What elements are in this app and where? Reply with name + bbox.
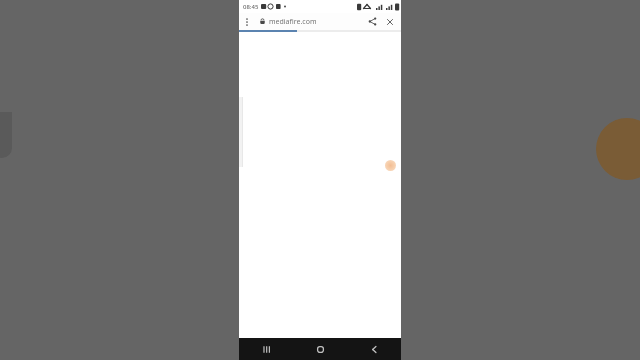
button[interactable]: Back — [347, 338, 401, 360]
button[interactable]: Share — [363, 13, 381, 30]
button[interactable]: Close — [381, 13, 399, 30]
staticText: mediafire.com — [269, 17, 317, 27]
button[interactable]: Home — [293, 338, 347, 360]
button[interactable]: More options — [239, 14, 255, 30]
button[interactable]: mediafire.com — [255, 13, 363, 30]
button[interactable]: Recent apps — [239, 338, 293, 360]
staticText: 08:45 — [243, 3, 259, 11]
